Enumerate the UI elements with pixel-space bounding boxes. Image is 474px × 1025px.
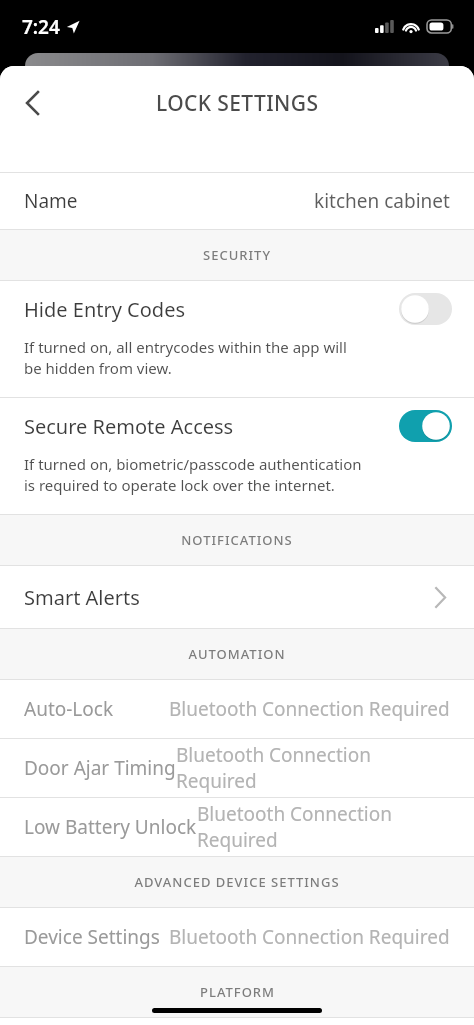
button[interactable]: Hide Entry Codes	[0, 281, 474, 397]
button[interactable]: Door Ajar Timing	[0, 739, 474, 797]
staticText: Secure Remote Access	[24, 413, 234, 440]
staticText: PLATFORM	[200, 983, 275, 1001]
staticText: If turned on, all entrycodes within the …	[24, 337, 347, 379]
staticText: kitchen cabinet	[314, 188, 450, 214]
staticText: NOTIFICATIONS	[181, 531, 293, 549]
button[interactable]: Low Battery Unlock	[0, 798, 474, 856]
button[interactable]: Smart Alerts	[0, 566, 474, 628]
staticText: Door Ajar Timing	[24, 755, 176, 781]
staticText: Bluetooth Connection Required	[176, 742, 450, 794]
staticText: AUTOMATION	[188, 645, 286, 663]
staticText: Low Battery Unlock	[24, 814, 197, 840]
button[interactable]: Auto-Lock	[0, 680, 474, 738]
staticText: Name	[24, 188, 78, 214]
button[interactable]: Secure Remote Access	[0, 398, 474, 514]
staticText: Bluetooth Connection Required	[169, 696, 450, 722]
staticText: ADVANCED DEVICE SETTINGS	[134, 873, 340, 891]
button[interactable]: Name	[0, 173, 474, 229]
staticText: Bluetooth Connection Required	[169, 924, 450, 950]
staticText: Device Settings	[24, 924, 160, 950]
staticText: Bluetooth Connection Required	[197, 801, 450, 853]
button[interactable]: Device Settings	[0, 908, 474, 966]
staticText: LOCK SETTINGS	[156, 89, 319, 118]
button[interactable]: Back	[10, 81, 54, 125]
staticText: If turned on, biometric/passcode authent…	[24, 454, 362, 496]
staticText: Smart Alerts	[24, 584, 140, 611]
staticText: Hide Entry Codes	[24, 296, 186, 323]
staticText: Auto-Lock	[24, 696, 114, 722]
staticText: SECURITY	[203, 246, 271, 264]
staticText: 7:24	[22, 14, 60, 40]
